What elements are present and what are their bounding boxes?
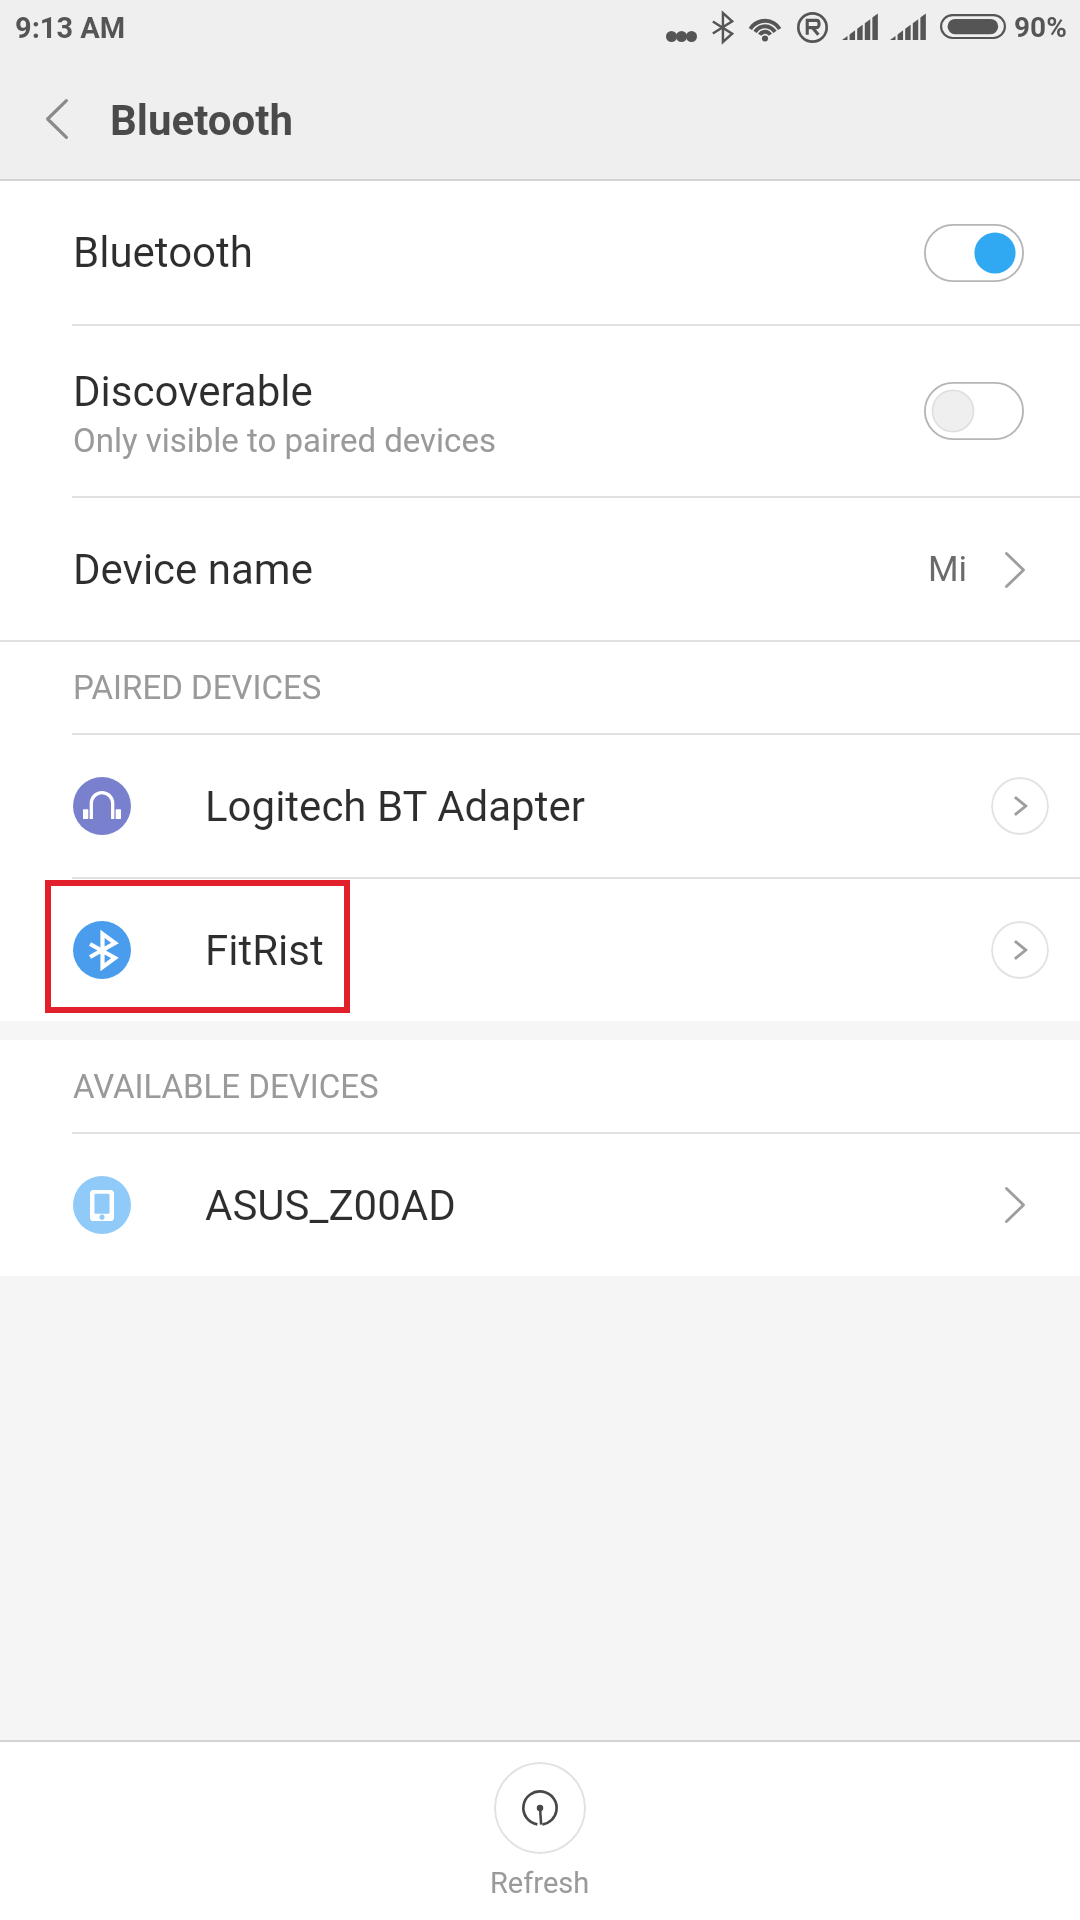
- staticText: Discoverable: [73, 367, 313, 416]
- staticText: 9:13 AM: [15, 11, 126, 45]
- staticText: AVAILABLE DEVICES: [73, 1067, 379, 1106]
- button[interactable]: Device name: [0, 498, 1080, 640]
- staticText: Bluetooth: [110, 96, 293, 145]
- staticText: PAIRED DEVICES: [73, 668, 322, 707]
- button[interactable]: Discoverable: [0, 326, 1080, 496]
- staticText: ASUS_Z00AD: [205, 1181, 456, 1230]
- staticText: Only visible to paired devices: [73, 421, 496, 460]
- button[interactable]: Refresh: [430, 1742, 650, 1914]
- button[interactable]: Bluetooth: [0, 181, 1080, 324]
- button[interactable]: Logitech BT Adapter: [0, 735, 1080, 877]
- staticText: Device name: [73, 545, 313, 594]
- staticText: Mi: [928, 549, 968, 590]
- staticText: 90%: [1014, 11, 1067, 44]
- button[interactable]: FitRist: [0, 879, 1080, 1021]
- staticText: FitRist: [205, 926, 324, 975]
- button[interactable]: ASUS_Z00AD: [0, 1134, 1080, 1276]
- button[interactable]: Switch on: [924, 224, 1024, 282]
- button[interactable]: Back: [12, 62, 100, 150]
- staticText: Logitech BT Adapter: [205, 782, 585, 831]
- staticText: Refresh: [490, 1866, 590, 1900]
- button[interactable]: Switch off: [924, 382, 1024, 440]
- staticText: Bluetooth: [73, 228, 253, 277]
